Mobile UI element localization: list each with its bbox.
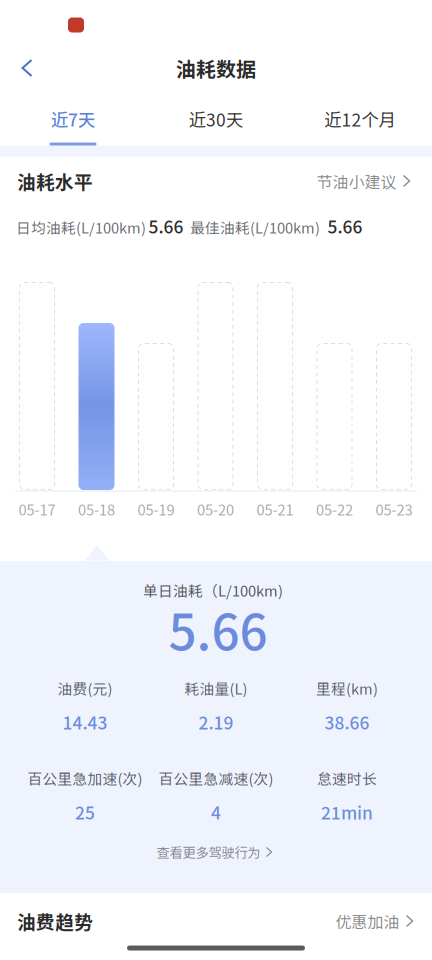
staticText: 5.66 [148, 213, 183, 239]
staticText: 耗油量(L) [184, 677, 247, 699]
staticText: 05-21 [256, 498, 293, 520]
staticText: 查看更多驾驶行为 [156, 842, 260, 862]
staticText: 油耗数据 [176, 53, 256, 82]
button[interactable]: 节油小建议 [316, 169, 409, 193]
staticText: 优惠加油 [335, 909, 399, 933]
button[interactable]: Back [5, 46, 49, 90]
staticText: 25 [75, 799, 95, 825]
staticText: 05-20 [197, 498, 234, 520]
staticText: 最佳油耗(L/100km) [190, 216, 320, 238]
button[interactable]: 近12个月 [300, 104, 420, 148]
staticText: 日均油耗(L/100km) [16, 216, 146, 238]
staticText: 油费(元) [57, 677, 112, 699]
staticText: 油耗水平 [17, 167, 93, 194]
staticText: 05-19 [137, 498, 174, 520]
staticText: 怠速时长 [317, 767, 377, 789]
staticText: 油费趋势 [17, 907, 93, 934]
button[interactable]: 近7天 [13, 104, 133, 148]
staticText: 2.19 [198, 709, 233, 735]
staticText: 05-23 [375, 498, 412, 520]
staticText: 5.66 [327, 213, 362, 239]
staticText: 里程(km) [316, 677, 378, 699]
staticText: 百公里急加速(次) [27, 767, 142, 789]
staticText: 近7天 [51, 106, 95, 132]
staticText: 05-17 [18, 498, 55, 520]
staticText: 近12个月 [324, 106, 395, 132]
staticText: 05-22 [316, 498, 353, 520]
staticText: 05-18 [78, 498, 115, 520]
button[interactable]: 近30天 [156, 104, 276, 148]
staticText: 21min [321, 799, 373, 825]
staticText: 节油小建议 [316, 169, 396, 193]
staticText: 单日油耗（L/100km) [143, 579, 283, 601]
button[interactable]: 优惠加油 [335, 909, 412, 933]
button[interactable]: 查看更多驾驶行为 [156, 842, 271, 862]
staticText: 5.66 [168, 593, 267, 665]
staticText: 近30天 [189, 106, 243, 132]
staticText: 14.43 [62, 709, 107, 735]
staticText: 38.66 [324, 709, 369, 735]
staticText: 百公里急减速(次) [158, 767, 273, 789]
staticText: 4 [211, 799, 221, 825]
